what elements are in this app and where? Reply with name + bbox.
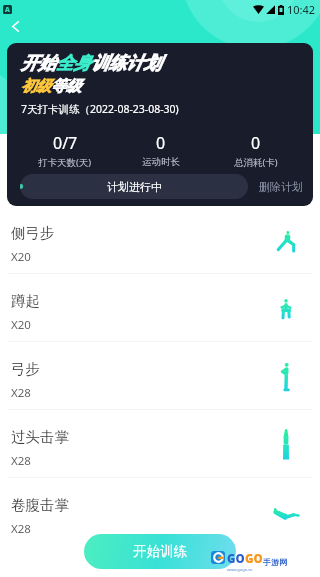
staticText: GO: [227, 551, 245, 567]
button[interactable]: 开始训练: [84, 534, 236, 569]
staticText: GO: [245, 551, 263, 567]
button[interactable]: 过头击掌: [0, 410, 320, 477]
staticText: 训练计划: [91, 52, 161, 74]
staticText: X20: [11, 317, 31, 333]
staticText: 0/7: [53, 132, 78, 154]
button[interactable]: 卷腹击掌: [0, 478, 320, 545]
staticText: 总消耗(卡): [234, 156, 278, 169]
staticText: X20: [11, 249, 31, 265]
staticText: 全身: [56, 52, 91, 74]
staticText: X28: [11, 385, 31, 401]
staticText: 计划进行中: [107, 180, 162, 194]
staticText: 删除计划: [259, 180, 303, 194]
staticText: www.gogo.cn: [227, 567, 253, 572]
staticText: 10:42: [287, 2, 316, 17]
staticText: 侧弓步: [11, 224, 55, 242]
staticText: 初级: [21, 77, 51, 96]
button[interactable]: Back: [2, 15, 28, 37]
button[interactable]: 弓步: [0, 342, 320, 409]
staticText: 打卡天数(天): [38, 156, 92, 169]
staticText: X28: [11, 453, 31, 469]
staticText: 弓步: [11, 360, 40, 378]
staticText: 7天打卡训练（2022-08-23-08-30): [21, 102, 179, 116]
staticText: X28: [11, 521, 31, 537]
staticText: 等级: [51, 77, 81, 96]
staticText: 手游网: [263, 557, 287, 567]
staticText: 过头击掌: [11, 428, 69, 446]
staticText: 开始训练: [133, 543, 187, 560]
staticText: A: [5, 5, 10, 14]
staticText: 0: [156, 132, 166, 154]
button[interactable]: 蹲起: [0, 274, 320, 341]
button[interactable]: 删除计划: [248, 174, 313, 199]
button[interactable]: 侧弓步: [0, 206, 320, 273]
staticText: 运动时长: [142, 156, 180, 168]
staticText: 开始: [21, 52, 56, 74]
staticText: 卷腹击掌: [11, 496, 69, 514]
staticText: 蹲起: [11, 292, 40, 310]
staticText: 0: [251, 132, 261, 154]
button[interactable]: 计划进行中: [20, 174, 248, 199]
